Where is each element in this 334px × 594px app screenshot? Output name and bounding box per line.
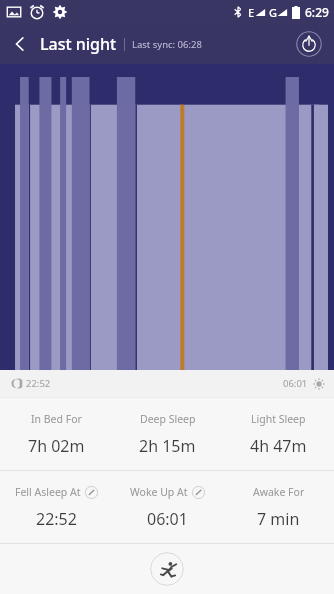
staticText: Awake For (253, 485, 305, 499)
button[interactable]: Back (0, 24, 40, 64)
staticText: 4h 47m (250, 435, 307, 457)
staticText: Deep Sleep (140, 412, 196, 426)
staticText: In Bed For (31, 412, 82, 426)
staticText: E (248, 5, 255, 20)
staticText: 2h 15m (139, 435, 196, 457)
button[interactable]: Light Sleep (223, 398, 334, 470)
staticText: G (269, 5, 277, 20)
button[interactable]: Deep Sleep (112, 398, 223, 470)
staticText: 7 min (257, 508, 300, 530)
staticText: 06:01 (283, 377, 308, 390)
staticText: 22:52 (36, 508, 77, 530)
button[interactable]: Awake For (223, 471, 334, 543)
button[interactable]: Share (292, 27, 326, 61)
button[interactable]: Fell Asleep At (0, 471, 112, 543)
staticText: Last sync: 06:28 (132, 38, 202, 51)
staticText: Woke Up At (130, 485, 188, 499)
button[interactable]: Woke Up At (112, 471, 223, 543)
staticText: Light Sleep (251, 412, 306, 426)
staticText: 06:01 (147, 508, 188, 530)
staticText: 6:29 (305, 4, 329, 20)
staticText: Fell Asleep At (15, 485, 81, 499)
button[interactable]: In Bed For (0, 398, 112, 470)
staticText: 7h 02m (28, 435, 85, 457)
button[interactable] (0, 64, 334, 370)
staticText: 22:52 (26, 377, 51, 390)
staticText: Last night (40, 33, 117, 55)
button[interactable]: Activity (150, 552, 184, 586)
